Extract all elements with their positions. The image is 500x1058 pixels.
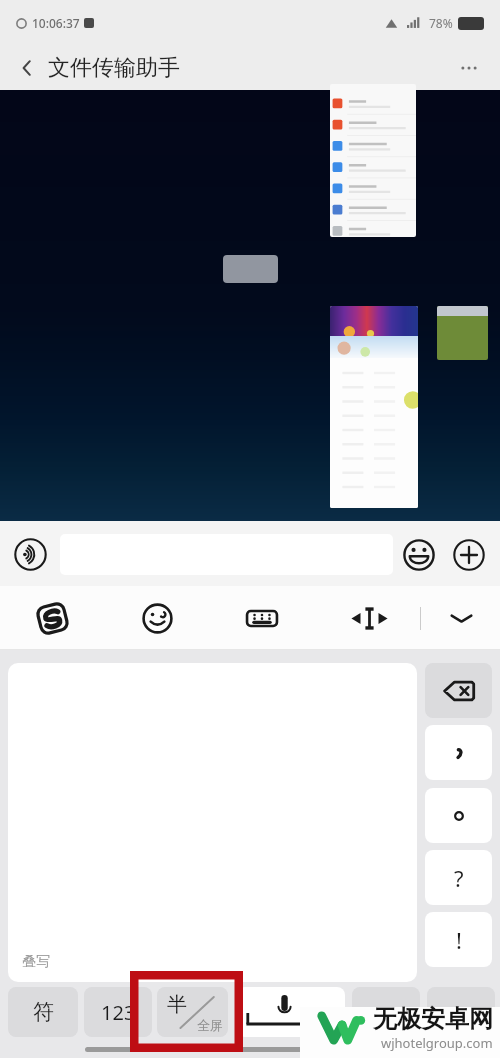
button[interactable]: More <box>453 539 485 571</box>
button[interactable]: 叠写 <box>8 663 417 982</box>
button[interactable]: Voice input <box>14 538 47 571</box>
staticText: wjhotelgroup.com <box>381 1034 493 1052</box>
staticText: ? <box>454 863 464 893</box>
button[interactable]: Emoji <box>131 592 183 644</box>
staticText: 符 <box>33 999 54 1025</box>
button[interactable]: Sogou menu <box>26 592 78 644</box>
staticText: 半 <box>167 992 187 1017</box>
button[interactable]: Voice and enter <box>237 987 345 1037</box>
button[interactable] <box>223 255 278 283</box>
staticText: 123 <box>101 999 136 1026</box>
button[interactable] <box>330 84 416 237</box>
button[interactable]: Move cursor <box>343 592 395 644</box>
button[interactable]: 123 <box>84 987 152 1037</box>
staticText: 无极安卓网 <box>373 1004 493 1034</box>
button[interactable]: Backspace <box>425 663 492 718</box>
staticText: 叠写 <box>22 953 50 971</box>
button[interactable]: Period <box>425 788 492 843</box>
button[interactable]: Keyboard <box>236 592 288 644</box>
button[interactable] <box>330 306 418 508</box>
button[interactable]: ? <box>425 850 492 905</box>
button[interactable]: ! <box>425 912 492 967</box>
staticText: 78% <box>429 15 453 31</box>
staticText: 10:06:37 <box>32 15 80 31</box>
button[interactable]: Emoji <box>403 539 435 571</box>
button[interactable]: Hide keyboard <box>435 592 487 644</box>
button[interactable] <box>437 306 488 360</box>
button[interactable]: 半 <box>157 987 228 1037</box>
button[interactable]: Comma <box>425 725 492 780</box>
button[interactable]: Symbols <box>352 987 420 1037</box>
staticText: 全屏 <box>197 1017 223 1033</box>
staticText: ! <box>456 925 462 955</box>
button[interactable]: Back <box>12 53 42 83</box>
button[interactable]: More options <box>454 53 484 83</box>
button[interactable]: Enter <box>427 987 495 1037</box>
button[interactable]: 符 <box>8 987 78 1037</box>
staticText: 文件传输助手 <box>48 54 180 82</box>
